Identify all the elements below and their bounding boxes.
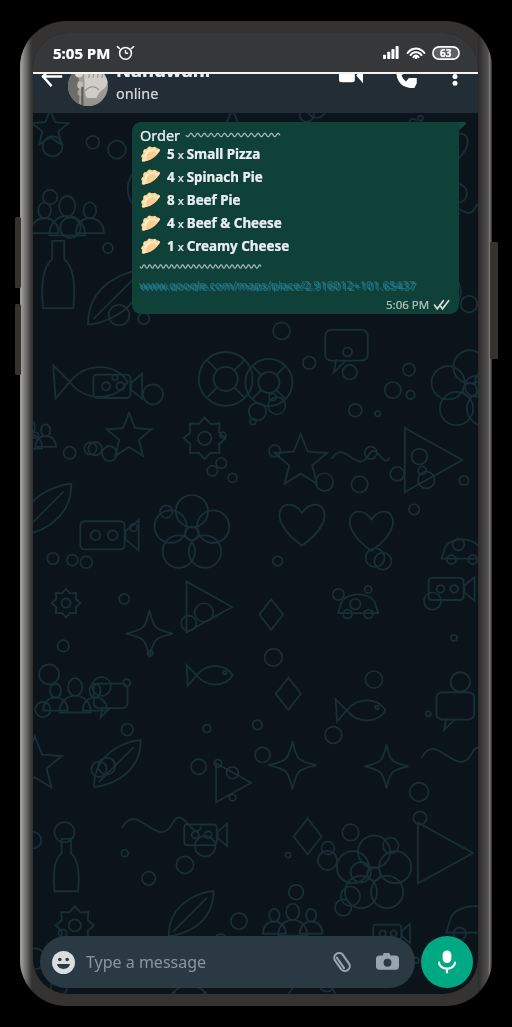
button[interactable]: Profile photo: [68, 66, 108, 106]
button[interactable]: Camera: [373, 948, 401, 976]
staticText: www.google.com/maps/place/2.916012+101.6…: [139, 277, 416, 290]
button[interactable]: Attach: [328, 948, 356, 976]
button[interactable]: Voice call: [389, 61, 423, 95]
staticText: Order: [140, 125, 181, 145]
staticText: 4 x Spinach Pie: [167, 168, 263, 186]
staticText: Type a message: [86, 951, 207, 973]
staticText: www.google.com/maps/place/2.916012+101.6…: [140, 278, 417, 291]
staticText: Nandwani: [116, 57, 211, 82]
staticText: online: [116, 83, 159, 103]
button[interactable]: Record voice message: [421, 936, 473, 988]
staticText: www.google.com/maps/place/2.916012+101.6…: [141, 279, 418, 292]
staticText: www.google.com/maps/place/2.916012+101.6…: [141, 279, 418, 292]
button[interactable]: Type a message: [40, 936, 415, 988]
button[interactable]: More options: [438, 61, 472, 95]
staticText: 🥟: [140, 144, 162, 164]
staticText: 4 x Beef & Cheese: [167, 214, 282, 232]
staticText: 5 x Small Pizza: [167, 145, 261, 163]
staticText: 1 x Creamy Cheese: [167, 237, 290, 255]
staticText: www.google.com/maps/place/2.916012+101.6…: [139, 277, 416, 290]
staticText: 8 x Beef Pie: [167, 191, 241, 209]
staticText: 🥟: [140, 236, 162, 256]
staticText: 🥟: [140, 213, 162, 233]
button[interactable]: Video call: [334, 58, 368, 92]
staticText: 🥟: [140, 167, 162, 187]
staticText: 5:05 PM: [53, 43, 111, 63]
staticText: 5:06 PM: [386, 297, 430, 313]
button[interactable]: Order: [132, 122, 459, 314]
button[interactable]: Back: [36, 71, 66, 101]
staticText: 63: [440, 46, 452, 60]
staticText: 🥟: [140, 190, 162, 210]
